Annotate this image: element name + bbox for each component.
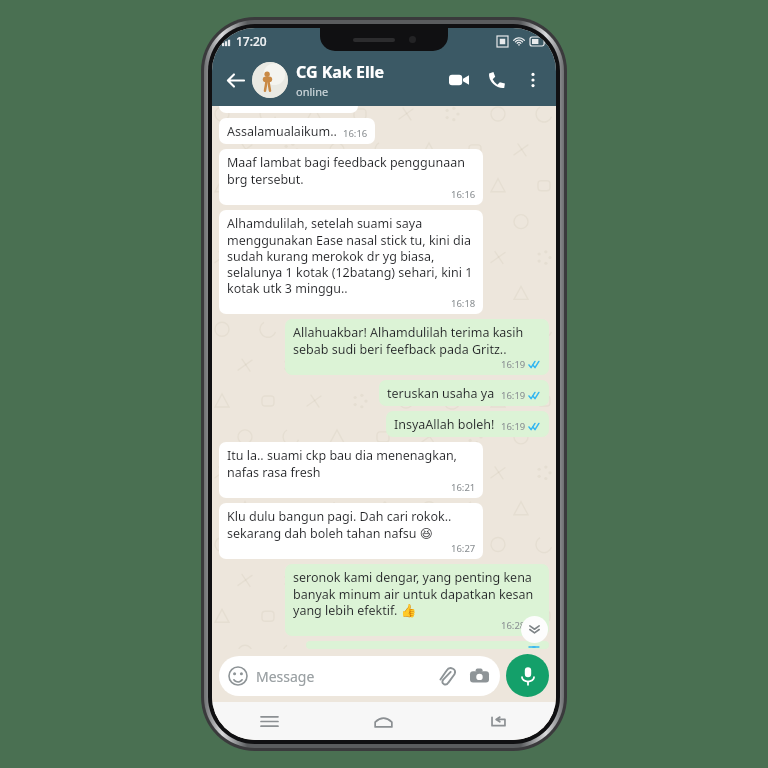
staticText: 16:16	[343, 127, 368, 140]
button[interactable]: Attach	[434, 664, 458, 688]
staticText: 16:16	[451, 188, 476, 201]
button[interactable]: teruskan usaha ya	[379, 380, 549, 406]
button[interactable]: Recents	[212, 702, 326, 740]
staticText: CG Kak Elle	[296, 61, 385, 83]
staticText: 16:27	[451, 542, 476, 555]
button[interactable]: Camera	[467, 664, 491, 688]
staticText: 16:19	[501, 389, 526, 402]
staticText: teruskan usaha ya	[387, 385, 495, 402]
button[interactable]: Itu la.. suami ckp bau dia menenagkan, n…	[219, 442, 483, 498]
button[interactable]: Maaf lambat bagi feedback penggunaan brg…	[219, 149, 483, 205]
staticText: Allahuakbar! Alhamdulilah terima kasih s…	[293, 324, 542, 357]
staticText: online	[296, 84, 329, 99]
staticText: Assalamualaikum..	[227, 123, 337, 140]
staticText: Maaf lambat bagi feedback penggunaan brg…	[227, 154, 476, 187]
staticText: 16:28	[501, 619, 526, 632]
button[interactable]: Klu dulu bangun pagi. Dah cari rokok.. s…	[219, 503, 483, 559]
staticText: 16:19	[501, 420, 526, 433]
button[interactable]: Scroll to bottom	[521, 616, 548, 643]
button[interactable]: Alhamdulilah, setelah suami saya menggun…	[219, 210, 483, 314]
staticText: Klu dulu bangun pagi. Dah cari rokok.. s…	[227, 508, 476, 541]
button[interactable]: Voice call	[478, 61, 516, 99]
staticText: 16:21	[451, 481, 476, 494]
button[interactable]: Voice message	[506, 654, 549, 697]
staticText: seronok kami dengar, yang penting kena b…	[293, 569, 542, 618]
button[interactable]: teruskan beri semangat pada suami 😎	[306, 641, 549, 649]
staticText: 17:20	[236, 33, 267, 49]
button[interactable]: seronok kami dengar, yang penting kena b…	[285, 564, 549, 636]
staticText: Itu la.. suami ckp bau dia menenagkan, n…	[227, 447, 476, 480]
staticText: Message	[256, 667, 315, 686]
staticText: 16:18	[451, 297, 476, 310]
staticText: 16:19	[501, 358, 526, 371]
button[interactable]: Back	[441, 702, 556, 740]
button[interactable]: InsyaAllah boleh!	[386, 411, 549, 437]
button[interactable]: Assalamualaikum..	[219, 118, 375, 144]
button[interactable]: Home	[326, 702, 441, 740]
button[interactable]: Video call	[440, 61, 478, 99]
staticText: Alhamdulilah, setelah suami saya menggun…	[227, 215, 476, 296]
button[interactable]	[252, 62, 288, 98]
button[interactable]: CG Kak Elle	[296, 61, 440, 99]
button[interactable]: Message	[219, 656, 500, 696]
button[interactable]: Allahuakbar! Alhamdulilah terima kasih s…	[285, 319, 549, 375]
button[interactable]: Back	[218, 63, 252, 97]
button[interactable]: More options	[516, 63, 550, 97]
staticText: InsyaAllah boleh!	[394, 416, 495, 433]
